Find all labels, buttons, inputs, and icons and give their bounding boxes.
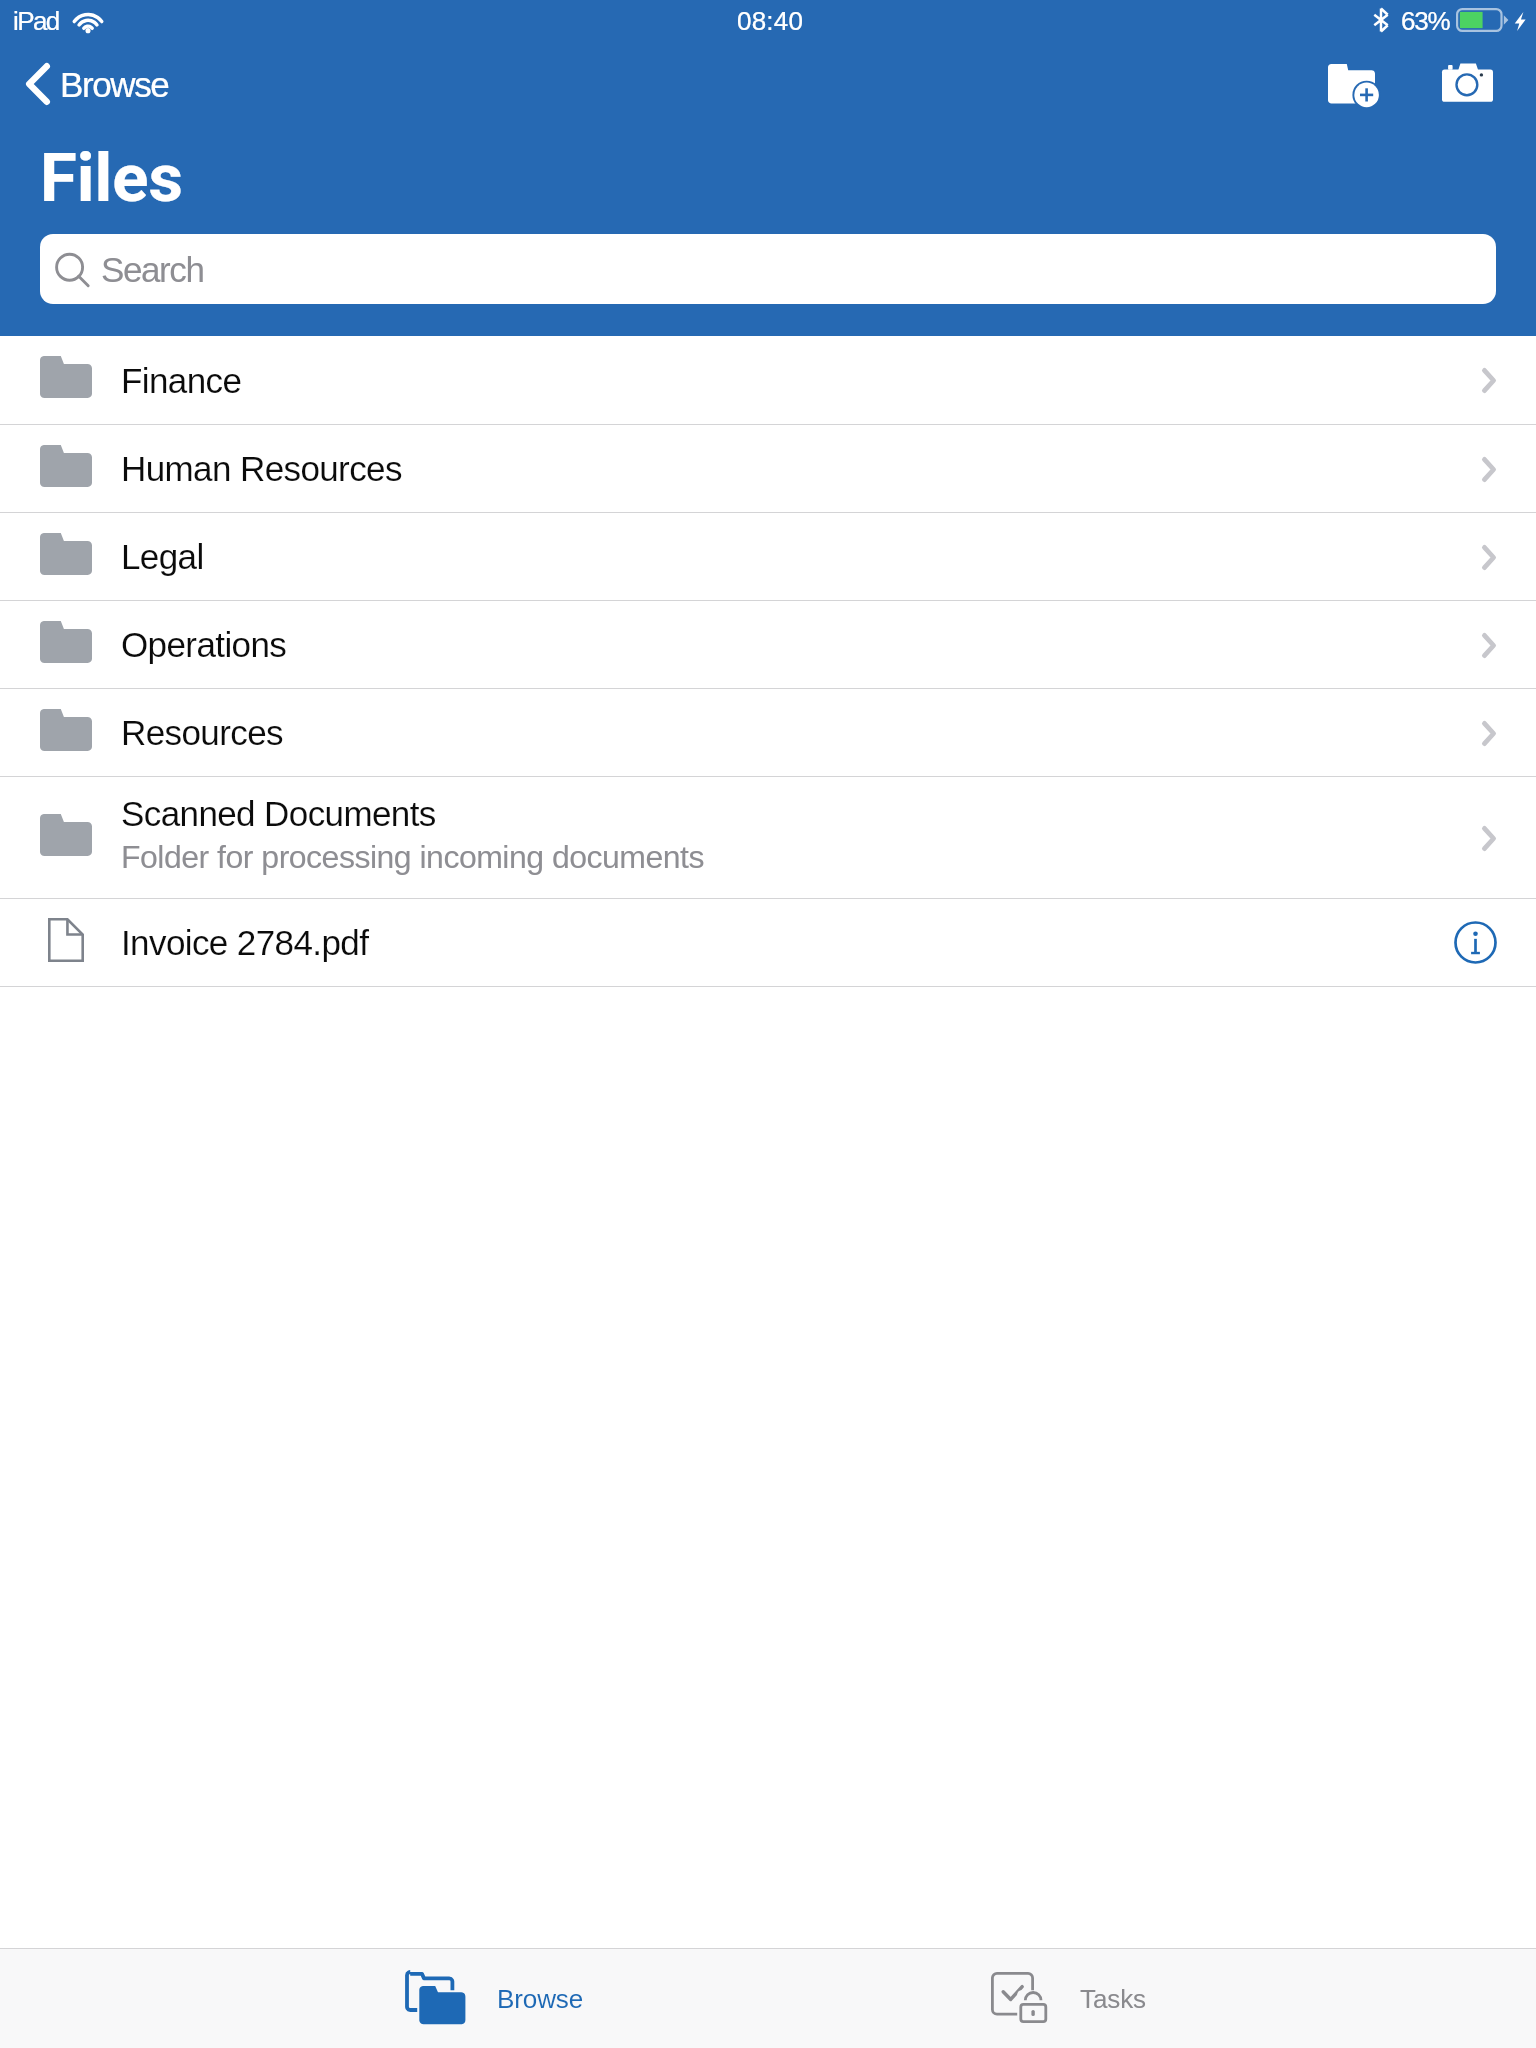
button[interactable]: Scan Documents xyxy=(1420,46,1536,122)
staticText: iPad xyxy=(13,6,59,35)
button[interactable]: Invoice 2784.pdf xyxy=(0,899,1536,987)
button[interactable]: Tasks xyxy=(984,1948,1156,2048)
button[interactable]: Resources xyxy=(0,689,1536,777)
button[interactable]: Legal xyxy=(0,513,1536,601)
button[interactable]: Browse xyxy=(0,46,185,122)
staticText: Files xyxy=(40,139,183,218)
staticText: Finance xyxy=(121,361,242,400)
button[interactable]: Scanned Documents xyxy=(0,777,1536,899)
staticText: Operations xyxy=(121,625,287,664)
button[interactable]: Human Resources xyxy=(0,425,1536,513)
staticText: Browse xyxy=(60,65,169,104)
staticText: Legal xyxy=(121,537,204,576)
staticText: Browse xyxy=(497,1984,584,2013)
button[interactable]: Info xyxy=(1443,910,1507,974)
staticText: Scanned Documents xyxy=(121,794,436,833)
staticText: Human Resources xyxy=(121,449,402,488)
staticText: Search xyxy=(101,250,204,289)
button[interactable]: Finance xyxy=(0,336,1536,425)
staticText: 63% xyxy=(1401,6,1450,35)
button[interactable]: New Folder xyxy=(1324,46,1420,122)
staticText: 08:40 xyxy=(737,6,804,35)
staticText: Tasks xyxy=(1080,1984,1146,2013)
button[interactable]: Browse xyxy=(400,1948,594,2048)
button[interactable]: Operations xyxy=(0,601,1536,689)
staticText: Invoice 2784.pdf xyxy=(121,923,369,962)
button[interactable]: Search xyxy=(40,234,1496,304)
staticText: Resources xyxy=(121,713,283,752)
staticText: Folder for processing incoming documents xyxy=(121,839,704,875)
